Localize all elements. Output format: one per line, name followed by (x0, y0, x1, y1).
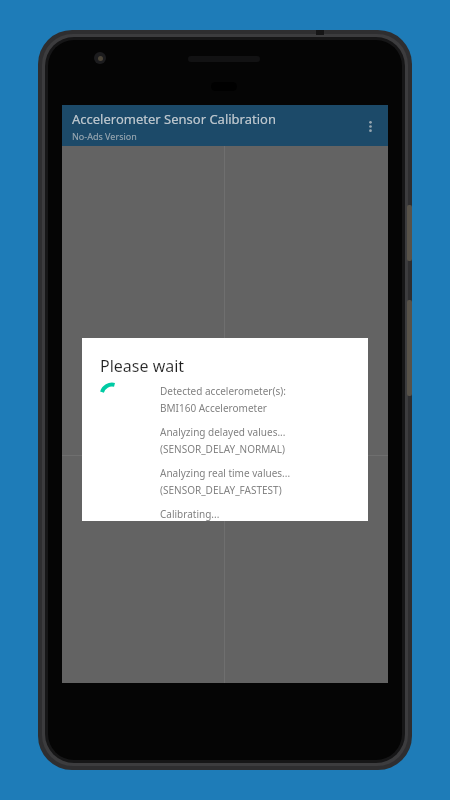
staticText: Detected accelerometer(s): (160, 384, 286, 398)
button[interactable]: Please wait (82, 338, 368, 521)
button[interactable]: More options (352, 108, 388, 144)
staticText: Please wait (100, 355, 185, 377)
staticText: No-Ads Version (72, 130, 137, 142)
staticText: (SENSOR_DELAY_NORMAL) (160, 442, 285, 456)
staticText: Analyzing real time values... (160, 466, 291, 480)
staticText: Calibrating... (160, 507, 220, 521)
staticText: BMI160 Accelerometer (160, 401, 267, 415)
staticText: Analyzing delayed values... (160, 425, 286, 439)
staticText: Accelerometer Sensor Calibration (72, 110, 276, 128)
staticText: (SENSOR_DELAY_FASTEST) (160, 483, 282, 497)
